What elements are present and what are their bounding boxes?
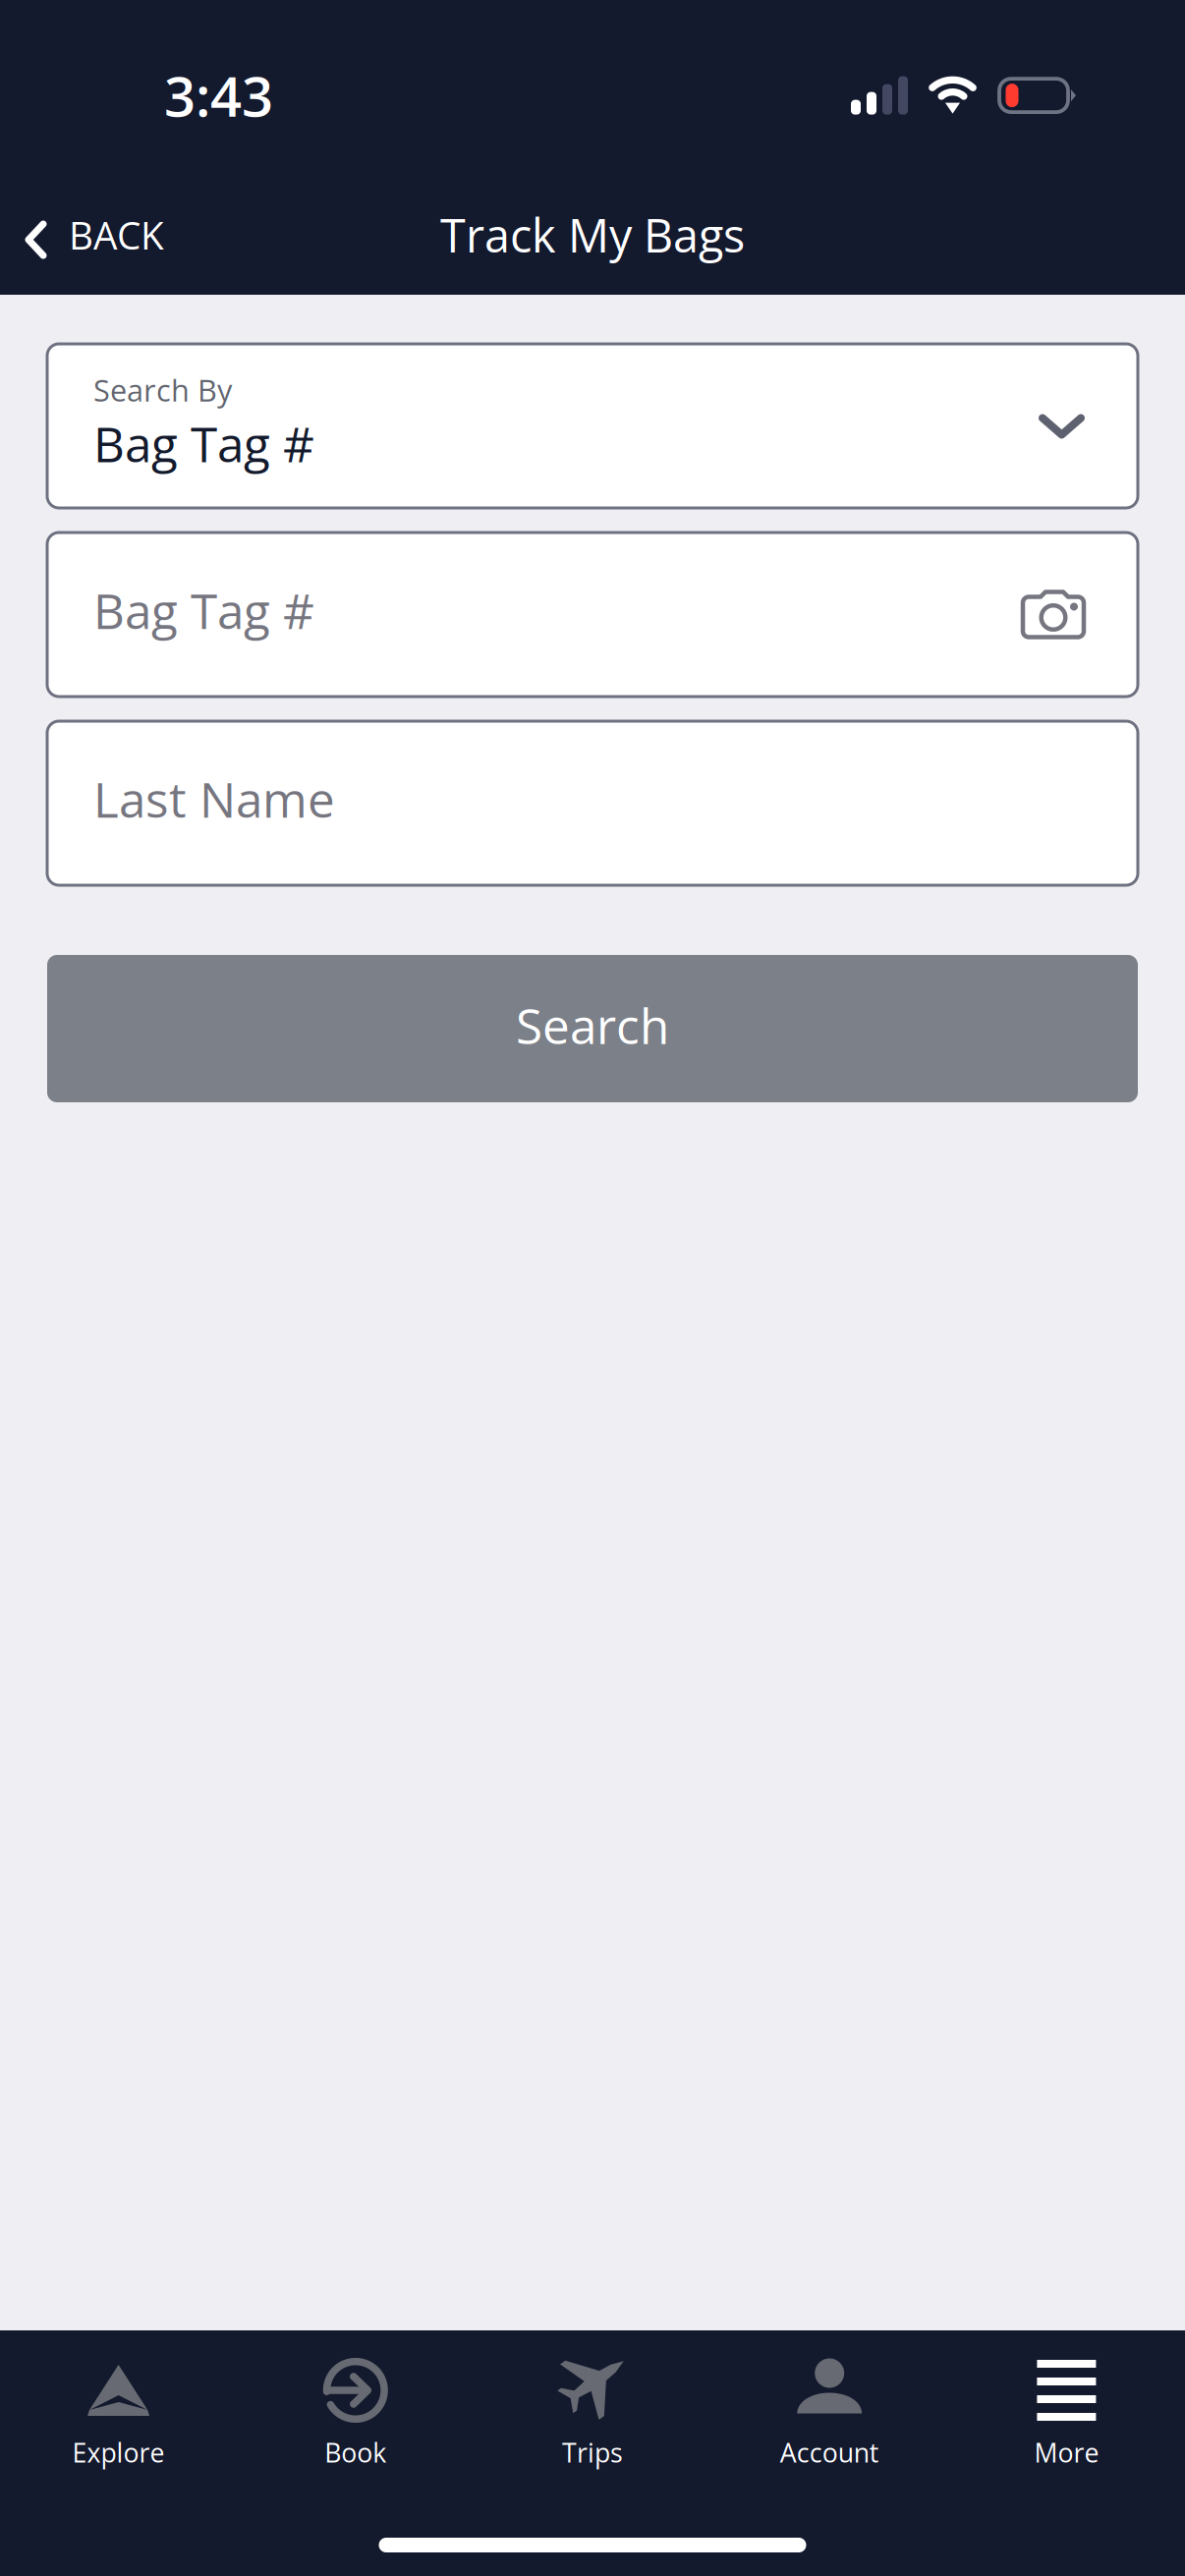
staticText: Bag Tag # [93, 577, 314, 643]
button[interactable]: Search By [47, 344, 1138, 508]
button[interactable]: Account [711, 2358, 948, 2470]
button[interactable]: BACK [0, 187, 188, 282]
staticText: Track My Bags [440, 204, 745, 266]
button[interactable]: More [948, 2358, 1185, 2470]
staticText: More [1034, 2435, 1099, 2470]
staticText: 3:43 [164, 58, 273, 133]
staticText: Book [325, 2435, 386, 2470]
button[interactable]: Book [237, 2358, 474, 2470]
staticText: Search By [93, 369, 232, 410]
button[interactable]: Search [47, 955, 1138, 1102]
button[interactable]: Trips [474, 2358, 711, 2470]
staticText: Account [780, 2435, 879, 2470]
staticText: Search [516, 992, 669, 1058]
staticText: Last Name [93, 766, 335, 832]
staticText: Bag Tag # [93, 410, 314, 476]
staticText: Trips [562, 2435, 623, 2470]
staticText: BACK [69, 209, 164, 261]
button[interactable]: Scan bag tag with camera [1015, 584, 1092, 645]
button[interactable]: Explore [0, 2358, 237, 2470]
staticText: Explore [72, 2435, 165, 2470]
